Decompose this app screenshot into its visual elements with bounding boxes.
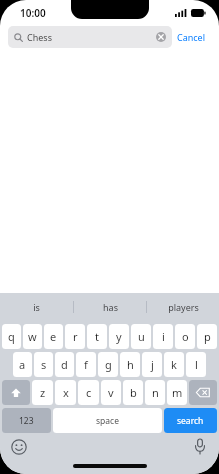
staticText: d bbox=[61, 357, 68, 372]
staticText: r bbox=[73, 329, 78, 344]
button[interactable]: g bbox=[98, 352, 118, 377]
staticText: h bbox=[127, 357, 134, 372]
button[interactable]: b bbox=[123, 380, 143, 405]
button[interactable]: o bbox=[175, 324, 195, 349]
staticText: s bbox=[41, 357, 47, 372]
staticText: m bbox=[172, 385, 183, 400]
staticText: o bbox=[182, 329, 189, 344]
staticText: j bbox=[151, 357, 154, 372]
button[interactable]: k bbox=[164, 352, 184, 377]
staticText: 123 bbox=[19, 415, 34, 427]
button[interactable]: e bbox=[44, 324, 63, 349]
button[interactable]: q bbox=[2, 324, 21, 349]
button[interactable]: f bbox=[76, 352, 96, 377]
button[interactable]: z bbox=[32, 380, 53, 405]
staticText: w bbox=[28, 329, 37, 344]
button[interactable]: players bbox=[147, 293, 219, 321]
button[interactable]: n bbox=[145, 380, 165, 405]
staticText: Chess bbox=[27, 31, 52, 43]
button[interactable]: w bbox=[23, 324, 42, 349]
button[interactable]: Dictation bbox=[193, 438, 207, 455]
button[interactable]: s bbox=[34, 352, 53, 377]
button[interactable]: v bbox=[101, 380, 121, 405]
button[interactable]: space bbox=[53, 408, 162, 433]
button[interactable]: search bbox=[164, 408, 217, 433]
button[interactable]: t bbox=[87, 324, 107, 349]
button[interactable]: Shift bbox=[2, 380, 30, 405]
staticText: has bbox=[103, 301, 118, 313]
button[interactable]: p bbox=[197, 324, 217, 349]
staticText: search bbox=[177, 415, 204, 427]
staticText: x bbox=[63, 385, 69, 400]
staticText: Cancel bbox=[177, 31, 206, 43]
staticText: y bbox=[116, 329, 122, 344]
button[interactable]: r bbox=[65, 324, 85, 349]
staticText: u bbox=[138, 329, 145, 344]
button[interactable]: c bbox=[78, 380, 99, 405]
staticText: p bbox=[204, 329, 211, 344]
staticText: z bbox=[40, 385, 46, 400]
staticText: l bbox=[195, 357, 198, 372]
button[interactable]: Delete bbox=[189, 380, 217, 405]
button[interactable]: Cancel bbox=[172, 26, 211, 48]
staticText: i bbox=[162, 329, 165, 344]
staticText: v bbox=[108, 385, 114, 400]
button[interactable]: is bbox=[0, 293, 73, 321]
button[interactable]: d bbox=[55, 352, 74, 377]
button[interactable]: Clear text bbox=[156, 32, 166, 42]
staticText: 10:00 bbox=[20, 6, 46, 20]
staticText: q bbox=[8, 329, 15, 344]
staticText: space bbox=[96, 415, 119, 427]
button[interactable]: m bbox=[167, 380, 187, 405]
button[interactable]: has bbox=[74, 293, 146, 321]
button[interactable]: Chess bbox=[8, 26, 172, 48]
staticText: b bbox=[130, 385, 137, 400]
staticText: t bbox=[95, 329, 99, 344]
staticText: players bbox=[168, 301, 199, 313]
staticText: k bbox=[171, 357, 177, 372]
staticText: f bbox=[84, 357, 88, 372]
staticText: g bbox=[105, 357, 112, 372]
button[interactable]: j bbox=[142, 352, 162, 377]
button[interactable]: u bbox=[131, 324, 151, 349]
button[interactable]: l bbox=[186, 352, 206, 377]
staticText: e bbox=[50, 329, 57, 344]
button[interactable]: y bbox=[109, 324, 129, 349]
staticText: a bbox=[19, 357, 26, 372]
staticText: c bbox=[86, 385, 92, 400]
button[interactable]: a bbox=[13, 352, 32, 377]
button[interactable]: Emoji bbox=[11, 439, 27, 455]
button[interactable]: h bbox=[120, 352, 140, 377]
staticText: n bbox=[152, 385, 159, 400]
staticText: is bbox=[33, 301, 40, 313]
button[interactable]: 123 bbox=[2, 408, 51, 433]
button[interactable]: i bbox=[153, 324, 173, 349]
button[interactable]: x bbox=[55, 380, 76, 405]
